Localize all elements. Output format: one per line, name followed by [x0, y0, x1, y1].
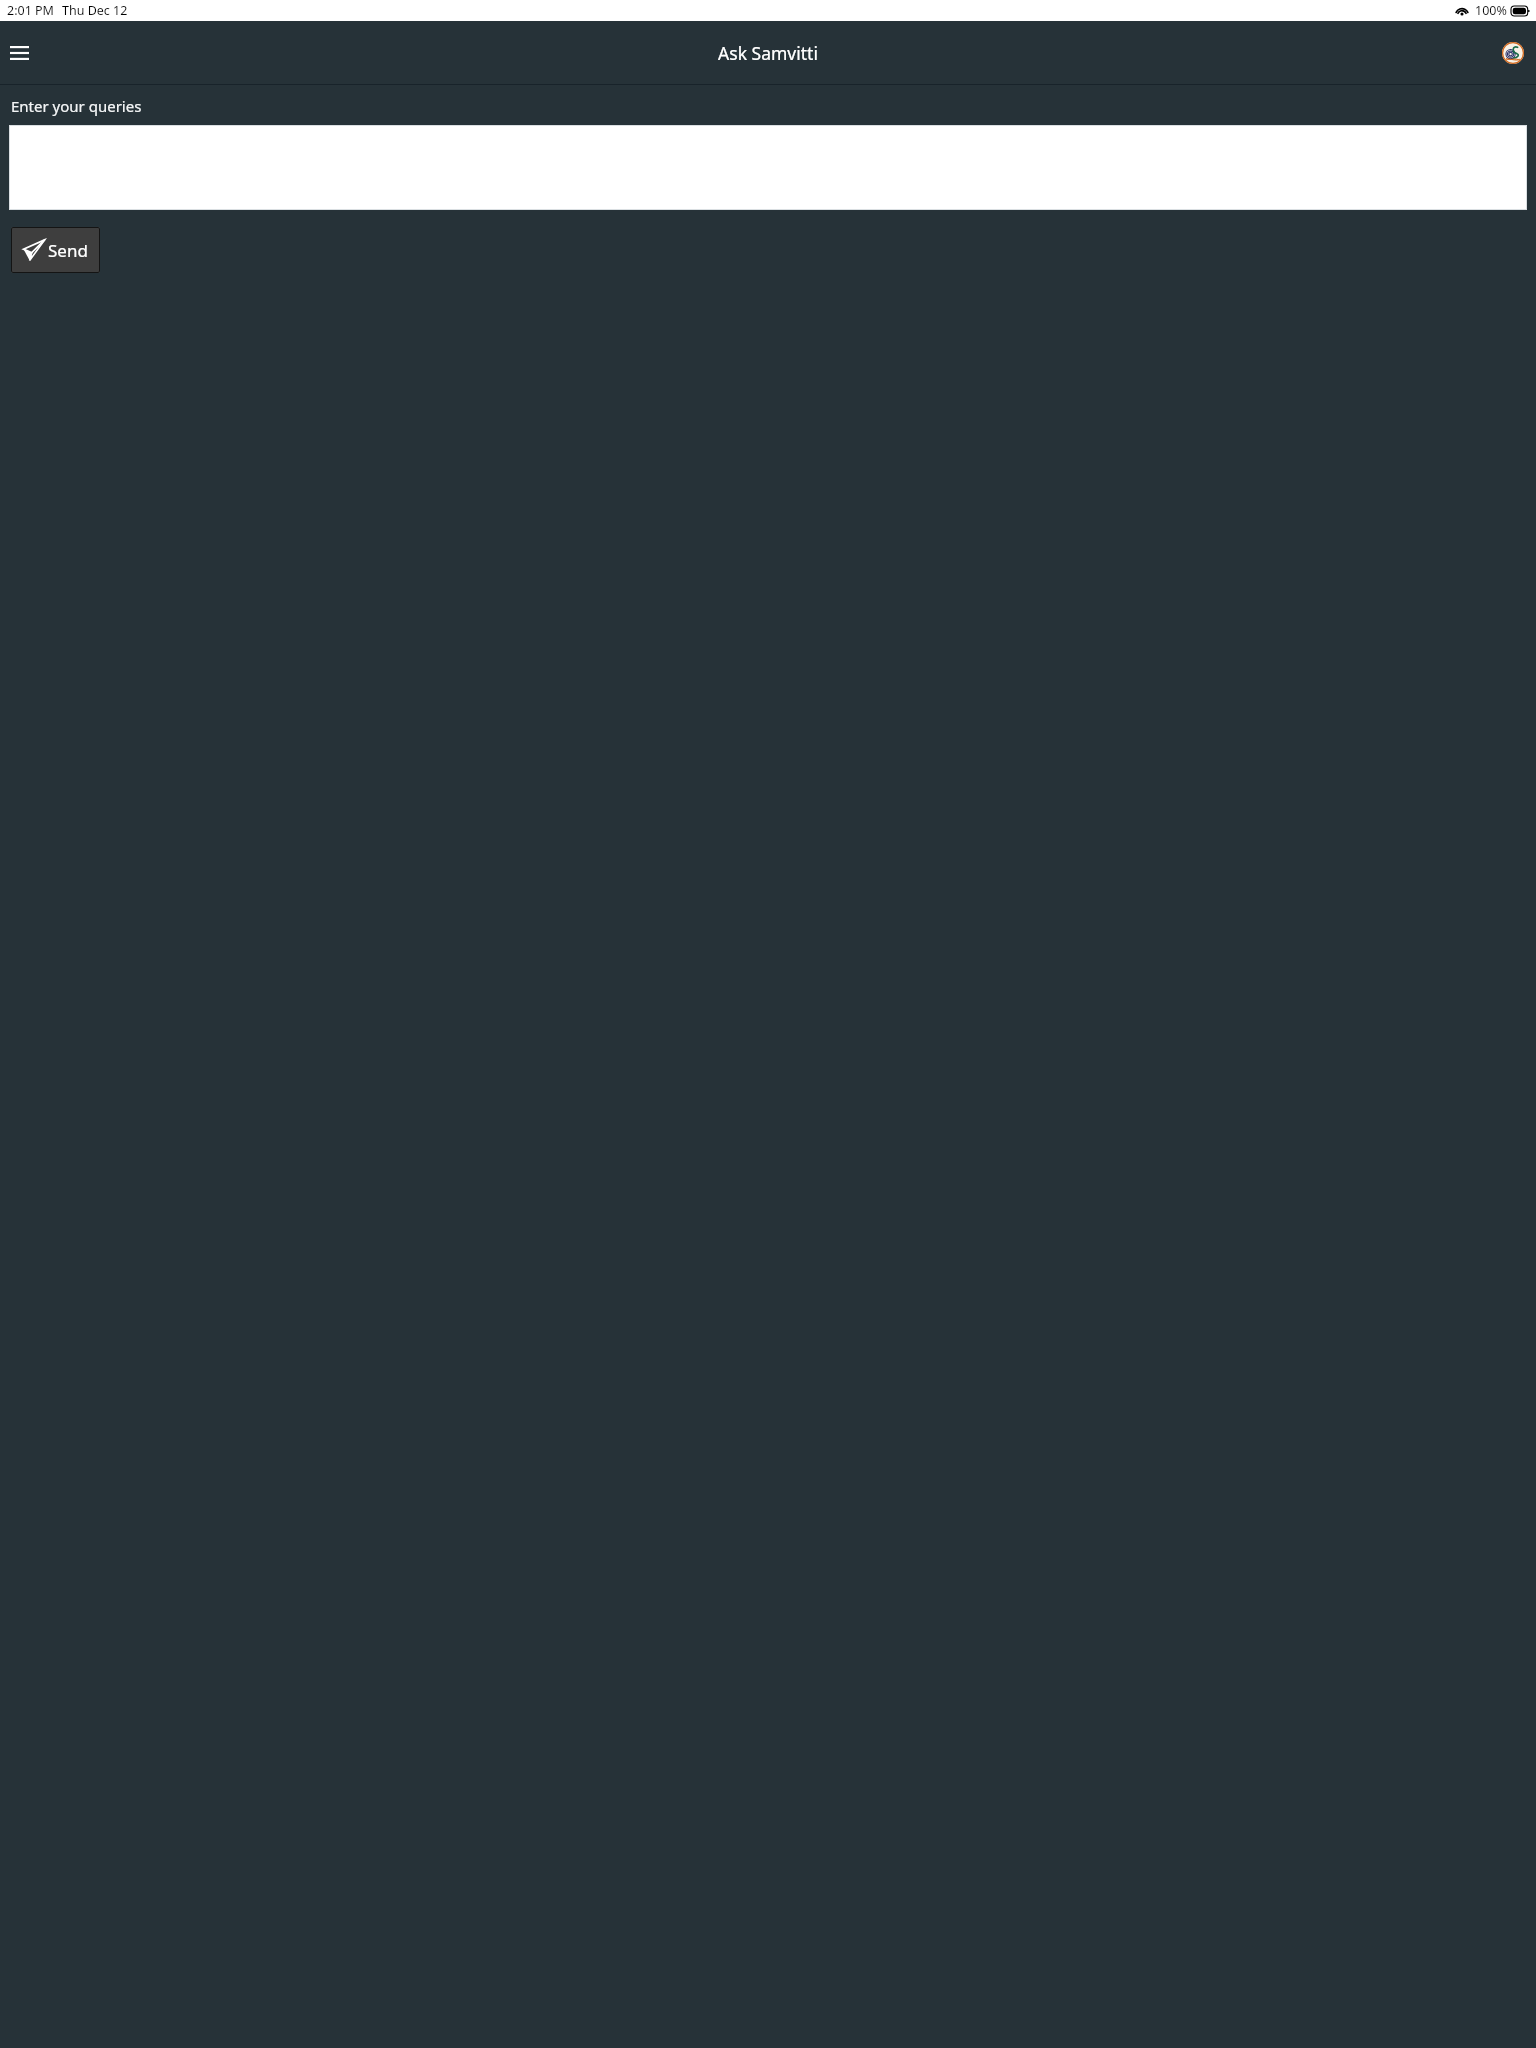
staticText: Enter your queries [11, 96, 142, 116]
staticText: Ask Samvitti [718, 41, 818, 65]
button[interactable] [9, 125, 1527, 210]
staticText: 2:01 PM [7, 2, 54, 19]
button[interactable]: Samvitti logo [1500, 40, 1526, 66]
staticText: 100% [1475, 2, 1507, 19]
staticText: Thu Dec 12 [62, 2, 128, 19]
button[interactable]: Send [11, 227, 100, 273]
button[interactable]: Open navigation menu [4, 38, 34, 68]
staticText: Send [48, 239, 88, 262]
